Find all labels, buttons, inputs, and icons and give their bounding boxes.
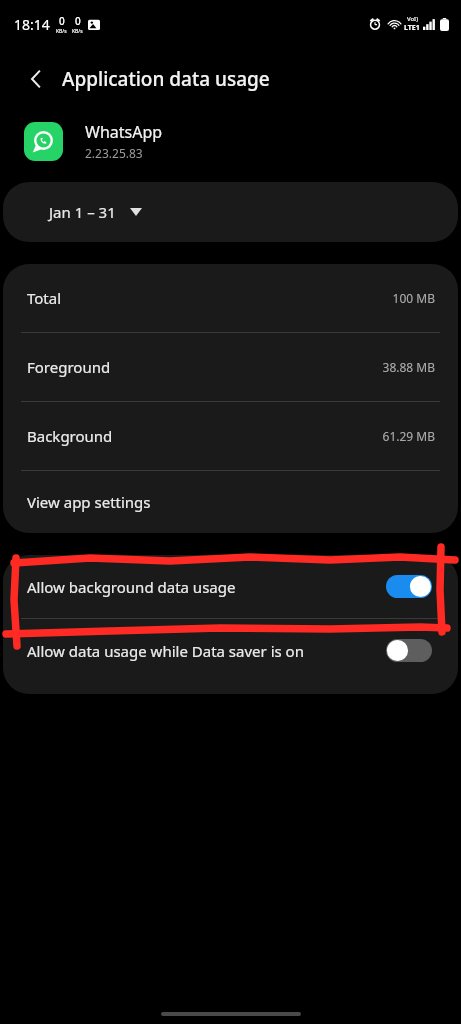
staticText: Foreground [27,357,111,377]
staticText: Background [27,426,113,446]
staticText: View app settings [27,492,151,512]
button[interactable]: Background [3,402,458,470]
staticText: Jan 1 – 31 [49,202,116,222]
staticText: KB/s [72,28,83,35]
staticText: Application data usage [62,66,270,92]
button[interactable]: View app settings [3,471,458,533]
button[interactable]: Back [14,57,58,101]
button[interactable]: Allow background data usage [3,555,458,618]
staticText: Allow background data usage [27,577,236,597]
staticText: KB/s [56,28,67,35]
button[interactable]: Jan 1 – 31 [3,182,458,242]
staticText: 0 [75,14,81,28]
staticText: 18:14 [14,15,50,34]
staticText: 38.88 MB [382,359,435,375]
staticText: 0 [59,14,65,28]
button[interactable]: Total [3,264,458,332]
button[interactable]: Allow data usage while Data saver is on [3,619,458,682]
staticText: WhatsApp [85,121,163,143]
staticText: LTE1 [404,23,420,33]
staticText: 2.23.25.83 [85,145,143,161]
staticText: Allow data usage while Data saver is on [27,641,304,661]
staticText: VoI) [407,15,418,23]
staticText: Total [27,288,62,308]
button[interactable]: Foreground [3,333,458,401]
staticText: 61.29 MB [382,428,435,444]
staticText: 100 MB [392,290,435,306]
